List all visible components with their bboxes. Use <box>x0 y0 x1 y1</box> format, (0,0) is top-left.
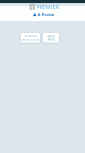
staticText: MORE <box>47 38 54 41</box>
staticText: PREMIER <box>37 3 59 11</box>
button[interactable]: LEARN <box>43 33 59 42</box>
staticText: SERVICE NOW <box>22 38 39 41</box>
staticText: SCHEDULE <box>24 34 36 38</box>
staticText: LEARN <box>47 34 55 38</box>
button[interactable]: SCHEDULE <box>21 33 40 42</box>
staticText: A Revival <box>37 12 54 17</box>
